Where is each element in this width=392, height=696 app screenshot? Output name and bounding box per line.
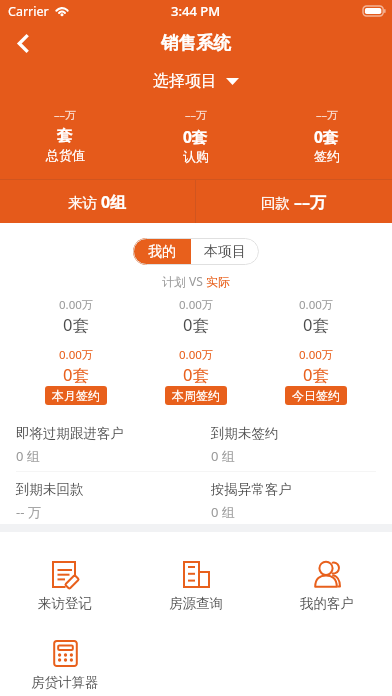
button[interactable]: 0.00万 <box>16 297 136 405</box>
staticText: 0组 <box>101 191 127 213</box>
staticText: 按揭异常客户 <box>211 481 292 498</box>
staticText: 即将过期跟进客户 <box>16 425 124 442</box>
button[interactable]: 回款 <box>196 180 392 223</box>
button[interactable]: 0.00万 <box>136 297 256 405</box>
staticText: 0.00万 <box>179 297 214 313</box>
staticText: 到期未回款 <box>16 481 84 498</box>
button[interactable]: ––万 <box>261 102 392 179</box>
staticText: 房贷计算器 <box>31 674 99 691</box>
button[interactable]: ––万 <box>130 102 261 179</box>
staticText: 0套 <box>183 363 209 386</box>
staticText: ––万 <box>294 191 327 213</box>
staticText: 销售系统 <box>161 32 231 54</box>
staticText: 3:44 PM <box>171 2 221 20</box>
staticText: 本项目 <box>204 243 246 261</box>
staticText: 0 组 <box>211 503 235 521</box>
staticText: 0套 <box>183 126 208 147</box>
staticText: 0套 <box>63 313 89 336</box>
staticText: 0 组 <box>211 447 235 465</box>
button[interactable]: 来访 <box>0 180 195 223</box>
staticText: 回款 <box>261 192 294 212</box>
staticText: 总货值 <box>46 147 85 163</box>
staticText: 来访 <box>68 192 101 212</box>
staticText: Carrier <box>8 3 49 20</box>
button[interactable]: 按揭异常客户 <box>211 481 392 521</box>
button[interactable]: 即将过期跟进客户 <box>16 425 211 465</box>
button[interactable]: 我的 <box>133 238 191 265</box>
staticText: 来访登记 <box>38 595 92 612</box>
button[interactable]: 到期未回款 <box>16 481 211 521</box>
button[interactable]: 房贷计算器 <box>0 639 130 691</box>
staticText: ––万 <box>54 107 76 122</box>
staticText: 0.00万 <box>179 347 214 363</box>
staticText: 本周签约 <box>172 388 220 403</box>
staticText: 房源查询 <box>169 595 223 612</box>
staticText: 我的客户 <box>300 595 354 612</box>
staticText: -- 万 <box>16 503 41 521</box>
button[interactable]: 本项目 <box>191 238 259 265</box>
staticText: 选择项目 <box>153 71 217 91</box>
staticText: 0套 <box>183 313 209 336</box>
staticText: 本月签约 <box>52 388 100 403</box>
staticText: ––万 <box>185 107 207 122</box>
staticText: 计划 VS 实际 <box>162 273 231 289</box>
staticText: 0套 <box>63 363 89 386</box>
staticText: 0套 <box>303 363 329 386</box>
staticText: 到期未签约 <box>211 425 279 442</box>
staticText: 套 <box>57 126 73 146</box>
button[interactable]: 0.00万 <box>256 297 376 405</box>
staticText: 0.00万 <box>299 297 334 313</box>
button[interactable]: 房源查询 <box>130 560 261 612</box>
staticText: ––万 <box>316 107 338 122</box>
staticText: 认购 <box>183 148 209 164</box>
staticText: 我的 <box>148 243 176 261</box>
button[interactable]: 来访登记 <box>0 560 130 612</box>
button[interactable]: Back <box>0 22 46 64</box>
staticText: 0 组 <box>16 447 40 465</box>
staticText: 0.00万 <box>299 347 334 363</box>
button[interactable]: ––万 <box>0 102 130 179</box>
button[interactable]: 我的客户 <box>261 560 392 612</box>
staticText: 0.00万 <box>59 297 94 313</box>
staticText: 0套 <box>314 126 339 147</box>
staticText: 0.00万 <box>59 347 94 363</box>
button[interactable]: 到期未签约 <box>211 425 392 465</box>
staticText: 今日签约 <box>292 388 340 403</box>
button[interactable]: 选择项目 <box>143 64 249 98</box>
staticText: 签约 <box>314 148 340 164</box>
staticText: 0套 <box>303 313 329 336</box>
